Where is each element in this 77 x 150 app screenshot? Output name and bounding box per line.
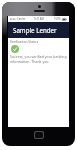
staticText: Verification Status — [10, 39, 38, 43]
staticText: Sample Lender — [13, 26, 57, 34]
button[interactable]: Home — [34, 131, 44, 139]
staticText: 9:41 AM — [34, 17, 44, 21]
staticText: 100% — [54, 17, 61, 21]
staticText: Success, you verified your banking infor… — [10, 54, 67, 64]
button[interactable]: Sample Lender — [8, 22, 69, 38]
staticText: Carrier — [17, 17, 26, 21]
